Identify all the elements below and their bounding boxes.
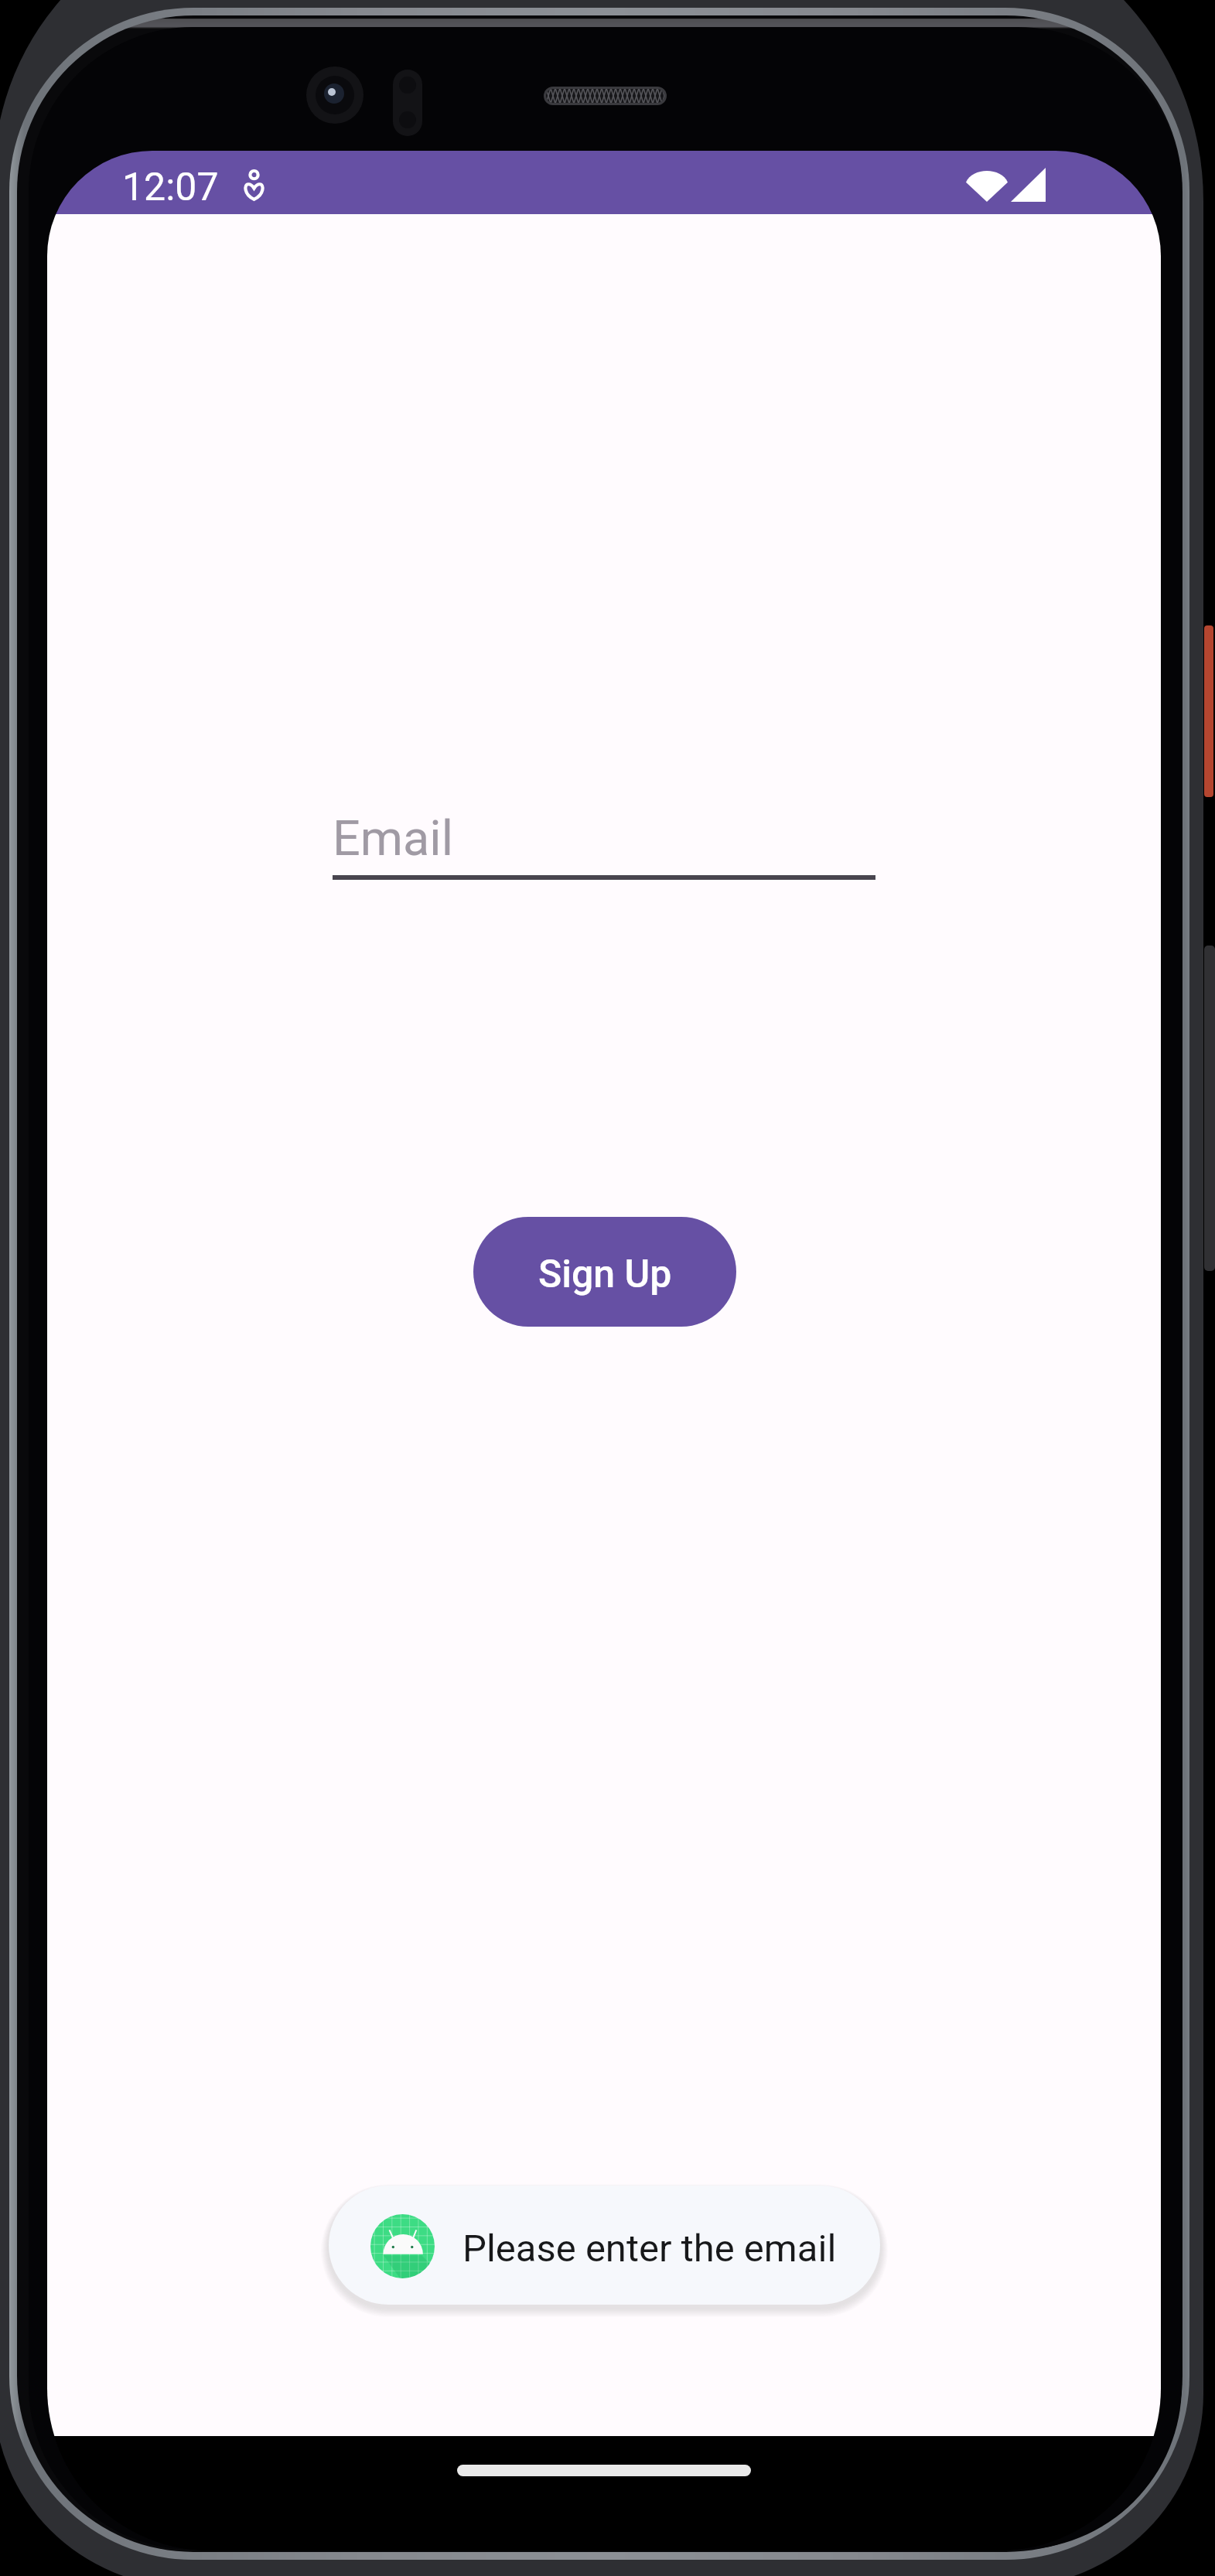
button[interactable]: Sign Up — [473, 1217, 736, 1327]
staticText: Sign Up — [538, 1252, 672, 1297]
other: Wi-Fi — [966, 167, 1008, 202]
other: Mobile signal — [1011, 168, 1046, 202]
button[interactable]: Email — [333, 810, 875, 880]
staticText: Please enter the email — [462, 2227, 837, 2271]
staticText: 12:07 — [122, 165, 219, 210]
other: Health status — [242, 169, 266, 201]
staticText: Email — [333, 810, 453, 867]
